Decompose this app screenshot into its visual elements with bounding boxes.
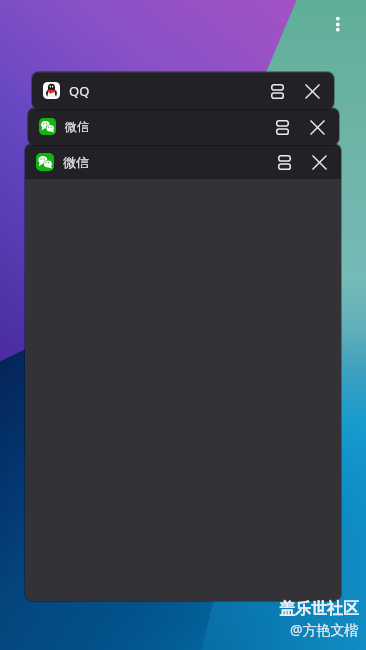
button[interactable]: More options xyxy=(325,6,350,31)
button[interactable]: Close xyxy=(304,147,334,177)
button[interactable]: Split screen xyxy=(267,112,297,142)
button[interactable]: Split screen xyxy=(262,76,292,106)
button[interactable]: Close xyxy=(302,112,332,142)
staticText: 微信 xyxy=(63,154,89,170)
button[interactable]: Split screen xyxy=(269,147,299,177)
button[interactable]: 微信 xyxy=(28,108,339,145)
staticText: 盖乐世社区 xyxy=(279,599,359,619)
button[interactable]: 微信 xyxy=(25,144,341,179)
staticText: QQ xyxy=(69,82,90,100)
staticText: @方艳文楷 xyxy=(290,620,359,639)
button[interactable]: Close xyxy=(297,76,327,106)
button[interactable]: QQ xyxy=(32,72,334,109)
staticText: 微信 xyxy=(65,119,89,134)
